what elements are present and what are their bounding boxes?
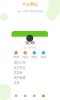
button[interactable]: 退换货: [39, 51, 48, 59]
staticText: 待发货: [22, 55, 28, 59]
staticText: 张小明: [25, 40, 34, 45]
button[interactable]: 设置: [11, 80, 48, 85]
button[interactable]: 收货地址: [11, 65, 48, 70]
button[interactable]: 我的订单: [11, 60, 48, 65]
staticText: 我的订单: [13, 60, 25, 65]
staticText: 优惠券: [13, 70, 22, 75]
staticText: 个人中心: [22, 1, 38, 7]
staticText: ID: 10086: [23, 46, 37, 49]
button[interactable]: Tab 2: [21, 95, 30, 100]
staticText: 收货地址: [13, 65, 25, 70]
button[interactable]: Tab 4: [39, 95, 48, 100]
button[interactable]: 待发货: [21, 51, 30, 59]
button[interactable]: Tab 3: [30, 95, 39, 100]
staticText: 待付款: [13, 55, 19, 59]
staticText: 待收货: [31, 55, 37, 59]
button[interactable]: 我的收藏: [11, 75, 48, 80]
staticText: 设置: [13, 80, 19, 85]
button[interactable]: 优惠券: [11, 70, 48, 75]
button[interactable]: 待收货: [30, 51, 39, 59]
button[interactable]: Tab 1: [11, 95, 21, 100]
staticText: 我的收藏: [13, 75, 25, 80]
button[interactable]: 待付款: [11, 51, 21, 59]
staticText: 退换货: [40, 55, 46, 59]
staticText: 让每一次服务 都有温度的陪伴: [16, 9, 43, 13]
